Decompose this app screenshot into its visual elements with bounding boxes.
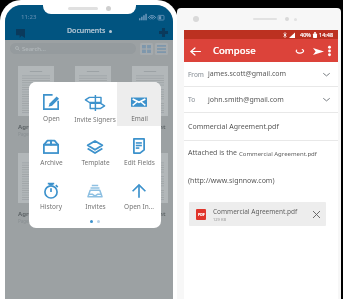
button[interactable]: Documents menu — [11, 24, 29, 42]
staticText: From — [188, 70, 204, 79]
staticText: Email — [131, 114, 148, 123]
staticText: 14:48 — [319, 31, 334, 38]
button[interactable]: History — [29, 170, 73, 214]
staticText: (http://www.signnow.com) — [188, 176, 275, 186]
button[interactable]: PDF — [189, 202, 326, 226]
button[interactable]: Open — [29, 82, 73, 126]
button[interactable]: Send — [310, 43, 326, 59]
button[interactable]: Edit Fields — [117, 126, 161, 170]
staticText: Pages 3 — [18, 218, 35, 224]
staticText: Attached is the — [188, 148, 239, 158]
staticText: Agreement — [18, 123, 52, 131]
staticText: Compose — [213, 44, 256, 57]
staticText: Archive — [40, 158, 63, 167]
button[interactable]: From — [184, 62, 338, 86]
staticText: Agreement — [132, 210, 166, 218]
button[interactable]: Open In... — [117, 170, 161, 214]
staticText: Commercial Agreement.pdf — [213, 207, 298, 216]
staticText: Open In... — [124, 202, 154, 211]
button[interactable]: Invite Signers — [73, 82, 117, 126]
staticText: Commercial Agreement.pdf — [188, 122, 279, 132]
staticText: Commercial Agreement.pdf — [239, 150, 317, 158]
button[interactable]: Back — [186, 42, 204, 60]
button[interactable]: Grid view — [140, 43, 153, 55]
staticText: john.smith@gmail.com — [208, 95, 284, 105]
button[interactable]: List view — [155, 43, 168, 55]
staticText: Agreement — [18, 210, 52, 218]
staticText: 40% — [300, 31, 311, 38]
staticText: 11:23 — [21, 13, 37, 21]
staticText: Invites — [85, 202, 106, 211]
button[interactable]: Archive — [29, 126, 73, 170]
staticText: PDF — [198, 212, 205, 217]
staticText: Pages 3 — [75, 218, 92, 224]
staticText: Open — [43, 114, 60, 123]
staticText: History — [40, 202, 62, 211]
staticText: Agreement — [75, 123, 109, 131]
button[interactable]: More options — [322, 44, 336, 58]
button[interactable]: Invites — [73, 170, 117, 214]
staticText: Search... — [22, 45, 46, 53]
staticText: james.scott@gmail.com — [208, 69, 287, 79]
staticText: Agreement — [132, 123, 166, 131]
staticText: Edit Fields — [124, 158, 155, 167]
button[interactable]: Template — [73, 126, 117, 170]
button[interactable]: Remove attachment — [308, 206, 324, 222]
staticText: Pages 3 — [18, 131, 35, 137]
staticText: Template — [81, 158, 110, 167]
button[interactable]: Search... — [10, 43, 136, 54]
staticText: Documents — [67, 26, 106, 36]
staticText: To — [188, 95, 196, 104]
button[interactable]: Email — [117, 82, 161, 126]
staticText: 129 KB — [213, 217, 226, 222]
button[interactable]: To — [184, 87, 338, 112]
button[interactable]: Add document — [155, 24, 171, 40]
staticText: Invite Signers — [74, 115, 116, 124]
button[interactable]: Documents — [67, 26, 112, 36]
button[interactable]: Attach file — [292, 43, 308, 59]
